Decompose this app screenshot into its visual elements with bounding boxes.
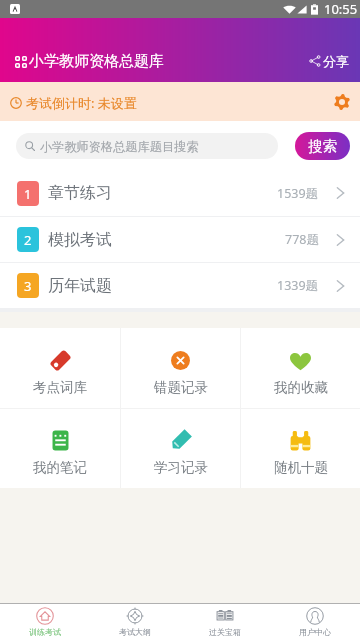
button[interactable]: 我的收藏	[241, 331, 360, 411]
staticText: 学习记录	[154, 459, 208, 476]
staticText: 1339题	[277, 277, 319, 294]
staticText: 小学教师资格总题库题目搜索	[40, 139, 199, 154]
button[interactable]: 用户中心	[270, 604, 360, 640]
staticText: 我的收藏	[274, 379, 328, 396]
button[interactable]: 错题记录	[121, 331, 240, 411]
button[interactable]: 2	[0, 217, 360, 262]
staticText: 随机十题	[274, 459, 328, 476]
staticText: 搜索	[308, 137, 337, 155]
staticText: 历年试题	[48, 276, 112, 296]
staticText: 小学教师资格总题库	[29, 52, 164, 71]
staticText: 我的笔记	[33, 459, 87, 476]
button[interactable]: 过关宝箱	[180, 604, 270, 640]
staticText: 过关宝箱	[209, 627, 241, 637]
staticText: 考点词库	[33, 379, 87, 396]
button[interactable]: 学习记录	[121, 411, 240, 491]
button[interactable]: 训练考试	[0, 604, 90, 640]
staticText: 分享	[323, 53, 349, 69]
staticText: 1	[24, 185, 32, 203]
staticText: 10:55	[324, 0, 358, 18]
staticText: 3	[24, 277, 32, 295]
button[interactable]: 我的笔记	[0, 411, 120, 491]
staticText: 模拟考试	[48, 230, 112, 250]
button[interactable]: 考点词库	[0, 331, 120, 411]
button[interactable]: 3	[0, 263, 360, 308]
staticText: 用户中心	[299, 627, 331, 637]
staticText: 章节练习	[48, 183, 112, 203]
staticText: 考试大纲	[119, 627, 151, 637]
staticText: 考试倒计时: 未设置	[26, 94, 137, 112]
button[interactable]: 分享	[301, 49, 360, 73]
button[interactable]: 随机十题	[241, 411, 360, 491]
button[interactable]: 1	[0, 170, 360, 216]
button[interactable]: 小学教师资格总题库题目搜索	[16, 133, 278, 159]
button[interactable]: 搜索	[295, 132, 350, 160]
staticText: 错题记录	[154, 379, 208, 396]
button[interactable]: Settings	[333, 93, 351, 111]
staticText: 1539题	[277, 185, 319, 202]
button[interactable]: 考试大纲	[90, 604, 180, 640]
staticText: 778题	[285, 231, 319, 248]
staticText: 2	[24, 231, 32, 249]
staticText: 训练考试	[29, 627, 61, 637]
